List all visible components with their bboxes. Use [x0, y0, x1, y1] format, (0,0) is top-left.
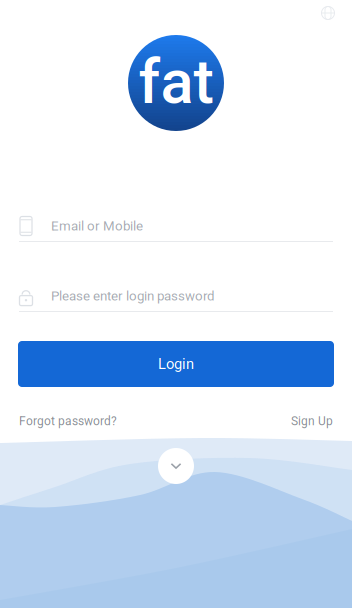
- button[interactable]: Login: [18, 341, 334, 387]
- staticText: Email or Mobile: [51, 218, 143, 234]
- button[interactable]: Sign Up: [291, 414, 333, 428]
- staticText: fat: [138, 46, 213, 118]
- button[interactable]: Forgot password?: [19, 414, 117, 428]
- staticText: Sign Up: [291, 414, 333, 428]
- button[interactable]: Language: [316, 1, 340, 25]
- button[interactable]: Show more: [158, 448, 194, 484]
- staticText: Login: [158, 355, 194, 373]
- staticText: Please enter login password: [51, 288, 215, 304]
- staticText: Forgot password?: [19, 414, 117, 428]
